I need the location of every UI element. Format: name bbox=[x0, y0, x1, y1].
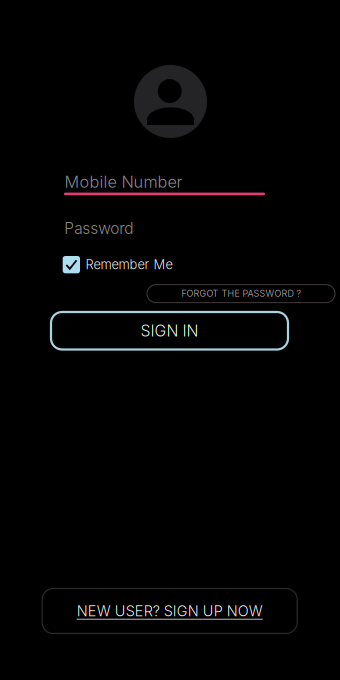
staticText: FORGOT THE PASSWORD ? bbox=[181, 288, 300, 299]
staticText: SIGN IN bbox=[140, 321, 198, 340]
staticText: NEW USER? SIGN UP NOW bbox=[77, 602, 263, 620]
staticText: Remember Me bbox=[85, 257, 172, 272]
button[interactable]: NEW USER? SIGN UP NOW bbox=[42, 588, 297, 633]
staticText: Mobile Number bbox=[65, 172, 183, 192]
button[interactable]: SIGN IN bbox=[51, 312, 288, 349]
button[interactable]: Remember Me bbox=[63, 256, 172, 273]
button[interactable]: FORGOT THE PASSWORD ? bbox=[147, 285, 335, 303]
staticText: Password bbox=[64, 219, 133, 238]
